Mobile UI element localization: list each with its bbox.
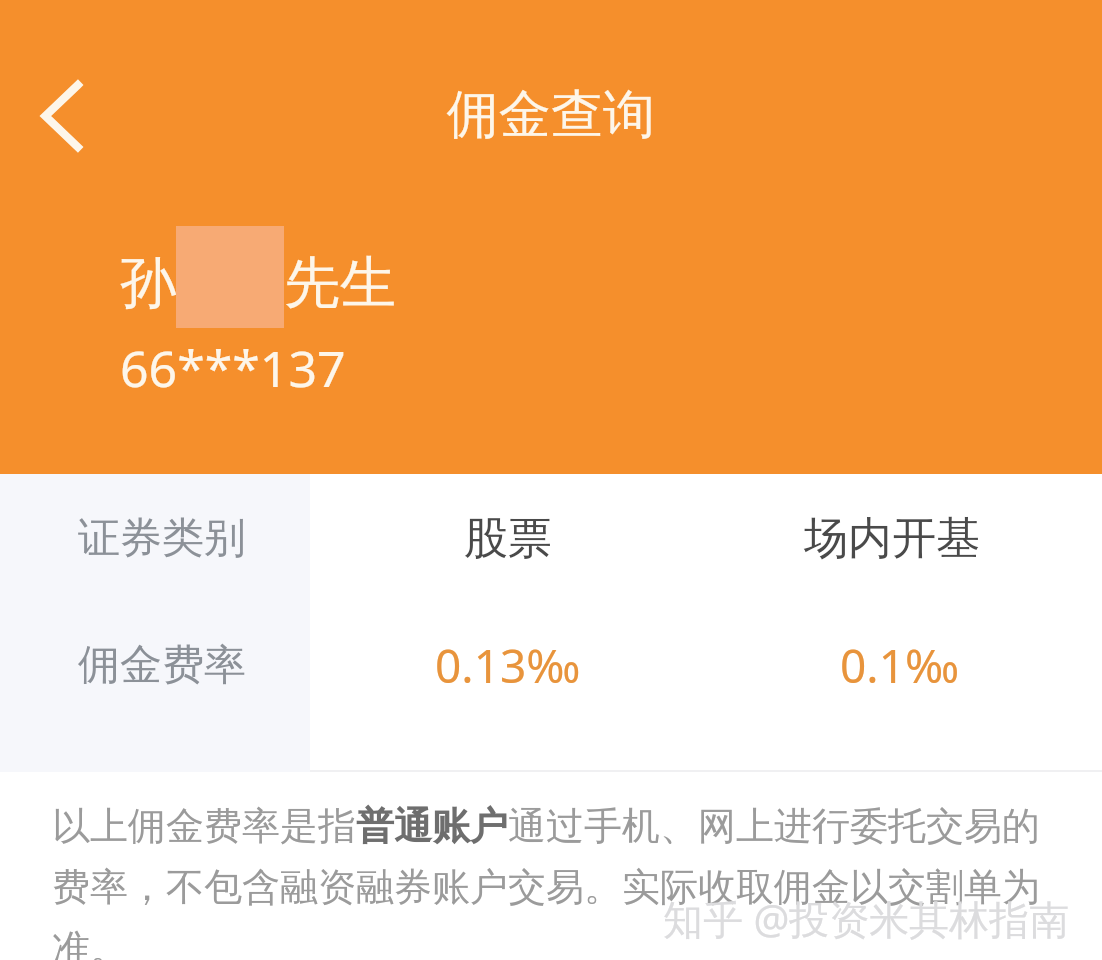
staticText: 证券类别	[78, 512, 246, 565]
staticText: 知乎 @投资米其林指南	[663, 891, 1070, 946]
staticText: 以上佣金费率是指普通账户通过手机、网上进行委托交易的费率，不包含融资融券账户交易…	[52, 802, 1072, 960]
staticText: 孙	[120, 248, 176, 319]
staticText: 0.1‰	[840, 634, 960, 697]
staticText: 0.13‰	[435, 634, 581, 697]
staticText: 先生	[284, 248, 396, 319]
staticText: 股票	[464, 511, 552, 566]
staticText: 佣金查询	[447, 82, 655, 148]
staticText: 佣金费率	[78, 639, 246, 692]
button[interactable]: Back	[14, 68, 110, 164]
staticText: 66***137	[120, 334, 346, 402]
staticText: 场内开基	[804, 511, 980, 566]
